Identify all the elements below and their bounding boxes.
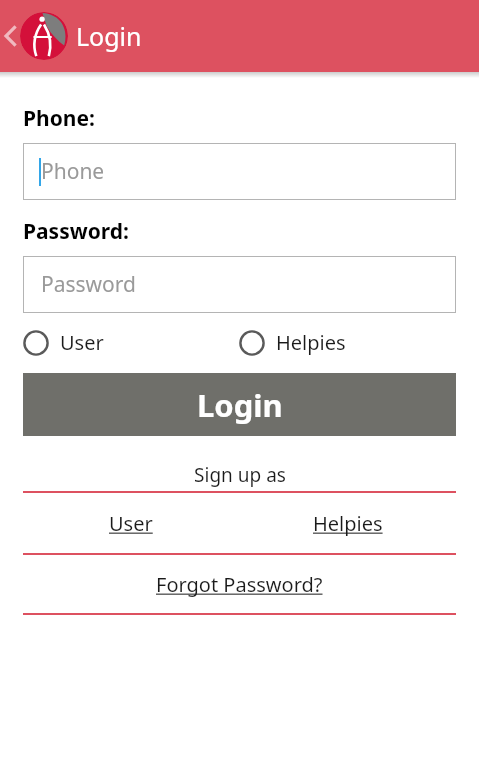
- staticText: Helpies: [313, 510, 383, 537]
- staticText: Forgot Password?: [156, 571, 323, 598]
- staticText: Phone: [41, 157, 105, 186]
- staticText: Password: [41, 270, 136, 299]
- button[interactable]: User: [23, 493, 239, 553]
- staticText: Phone:: [23, 104, 95, 133]
- staticText: Login: [197, 384, 283, 426]
- staticText: Password:: [23, 217, 129, 246]
- button[interactable]: User: [23, 329, 239, 356]
- button[interactable]: Helpies: [239, 329, 456, 356]
- staticText: User: [109, 510, 153, 537]
- button[interactable]: Back: [0, 0, 20, 72]
- staticText: User: [60, 329, 104, 356]
- button[interactable]: Password: [23, 256, 456, 313]
- staticText: Helpies: [276, 329, 346, 356]
- button[interactable]: Phone: [23, 143, 456, 200]
- staticText: Login: [76, 19, 142, 53]
- staticText: Sign up as: [194, 462, 286, 488]
- button[interactable]: Login: [23, 373, 456, 436]
- button[interactable]: Helpies: [239, 493, 456, 553]
- other: App logo: [20, 12, 68, 60]
- button[interactable]: Forgot Password?: [23, 555, 456, 613]
